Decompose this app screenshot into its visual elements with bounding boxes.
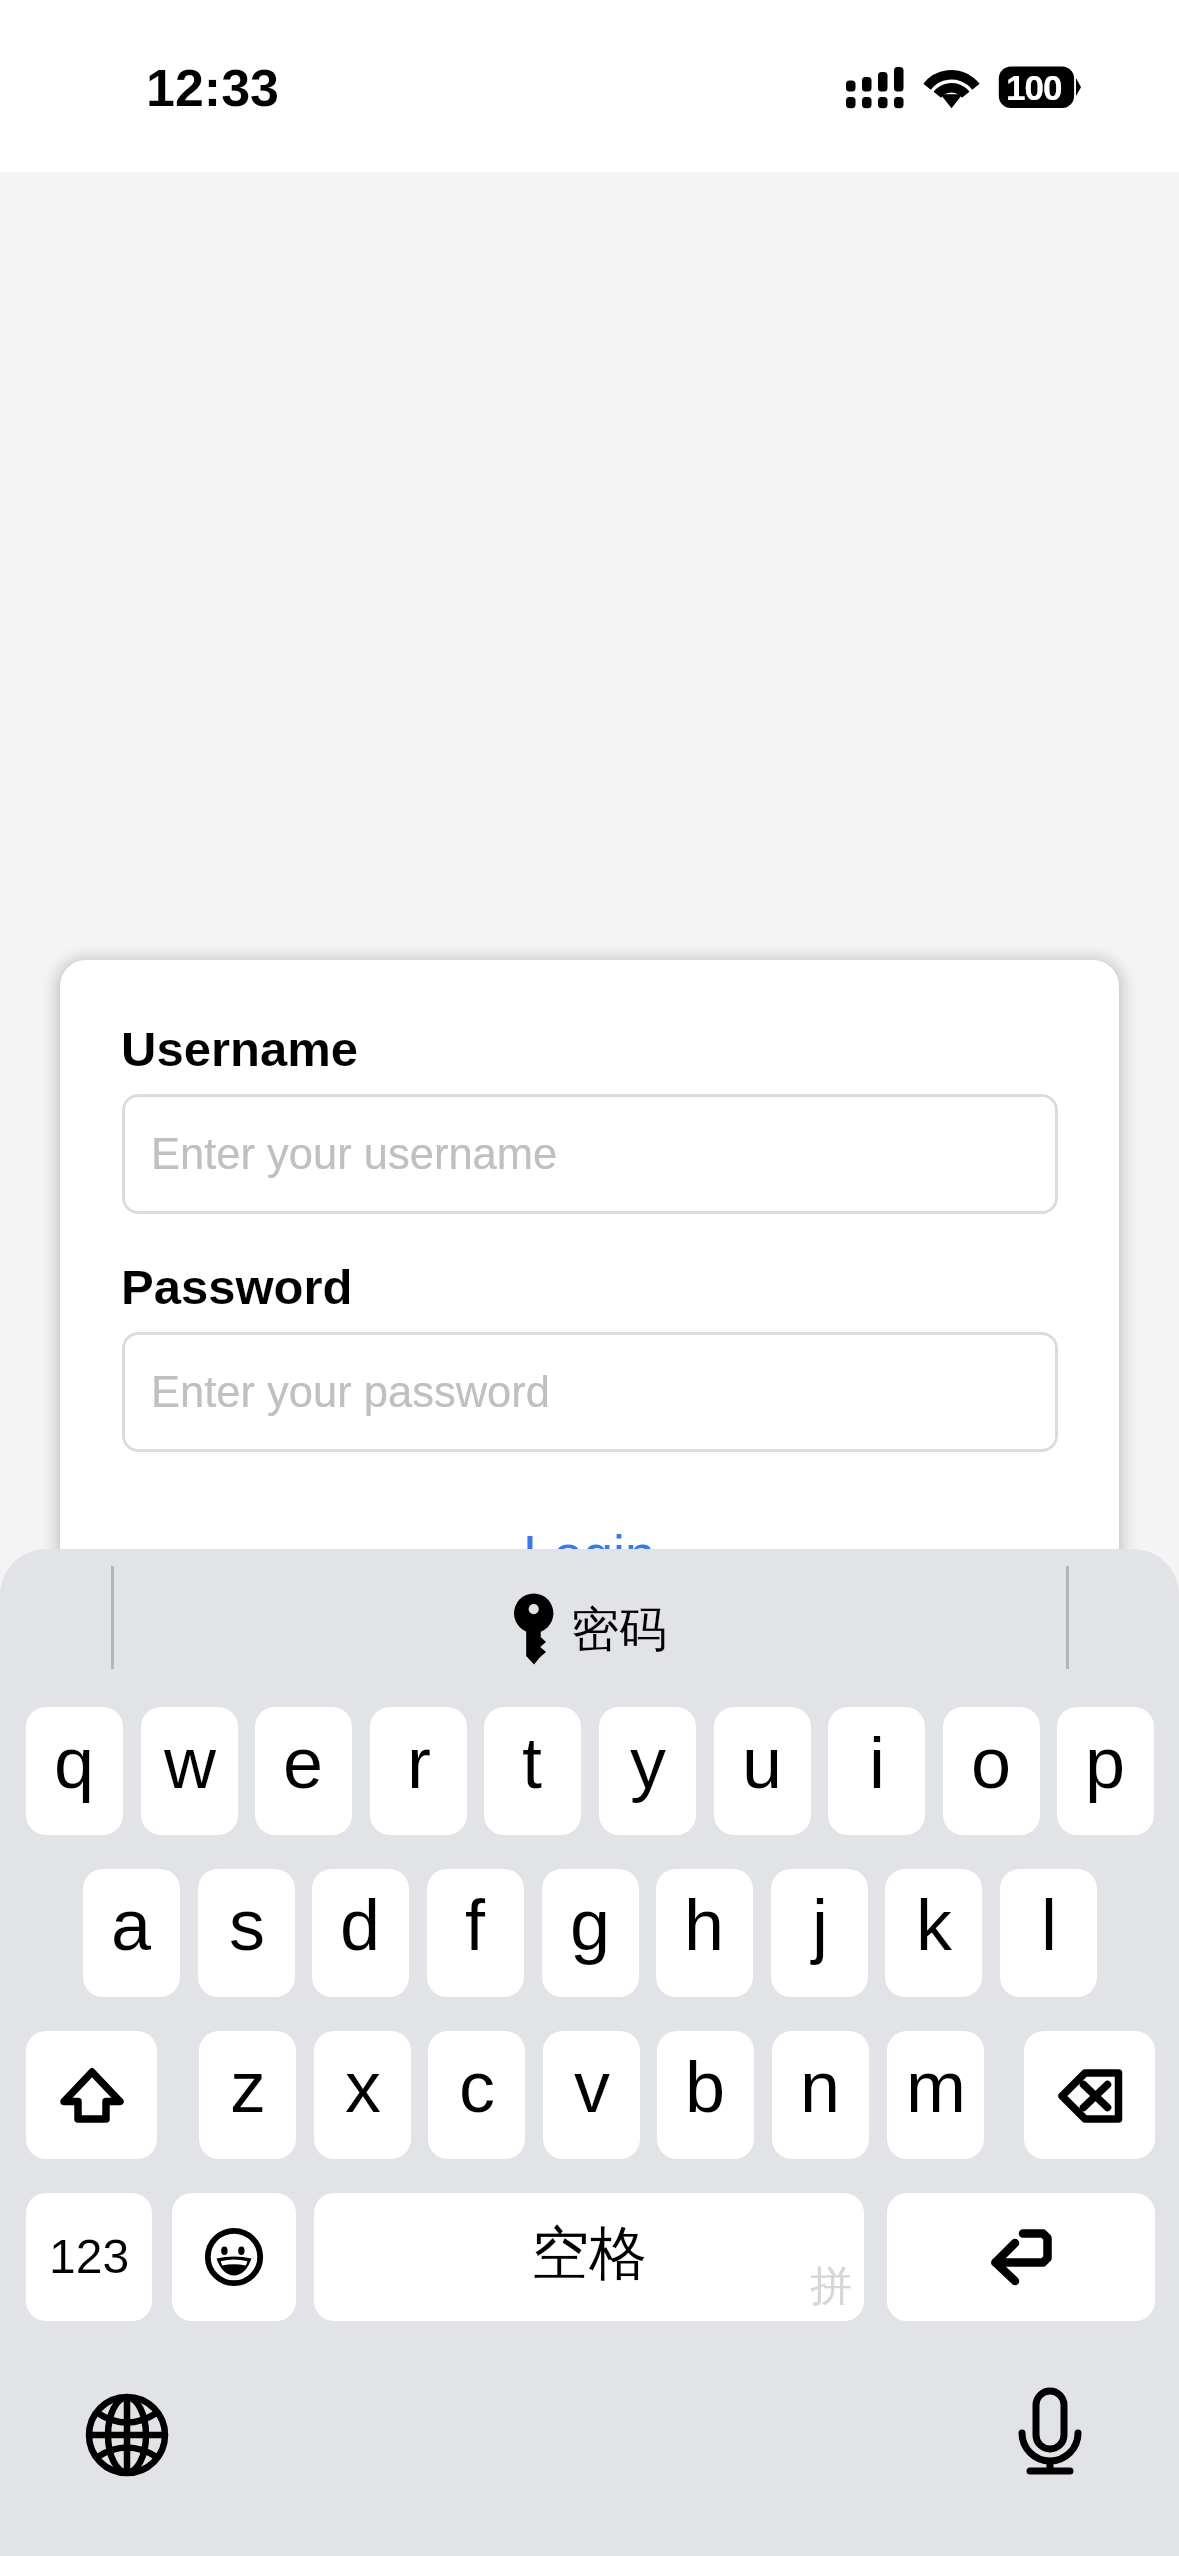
staticText: e	[283, 1723, 324, 1803]
staticText: v	[574, 2047, 610, 2127]
staticText: a	[111, 1885, 152, 1965]
button[interactable]: a	[83, 1869, 180, 1997]
staticText: b	[685, 2047, 726, 2127]
staticText: 100	[1006, 68, 1062, 107]
button[interactable]: Login	[60, 1500, 1119, 1600]
staticText: x	[345, 2047, 381, 2127]
button[interactable]: 123	[26, 2193, 152, 2321]
staticText: g	[570, 1885, 611, 1965]
staticText: f	[465, 1885, 486, 1965]
button[interactable]: Enter your username	[122, 1094, 1058, 1214]
button[interactable]: x	[314, 2031, 411, 2159]
staticText: k	[916, 1885, 952, 1965]
button[interactable]: r	[370, 1707, 467, 1835]
button[interactable]: b	[657, 2031, 754, 2159]
button[interactable]: j	[771, 1869, 868, 1997]
button[interactable]: Enter your password	[122, 1332, 1058, 1452]
button[interactable]: Return	[887, 2193, 1155, 2321]
staticText: n	[800, 2047, 841, 2127]
button[interactable]: Switch keyboard	[77, 2385, 177, 2485]
staticText: 123	[49, 2230, 130, 2284]
button[interactable]: s	[198, 1869, 295, 1997]
button[interactable]: p	[1057, 1707, 1154, 1835]
button[interactable]: Backspace	[1024, 2031, 1155, 2159]
button[interactable]: t	[484, 1707, 581, 1835]
staticText: l	[1041, 1885, 1057, 1965]
button[interactable]: c	[428, 2031, 525, 2159]
button[interactable]: f	[427, 1869, 524, 1997]
staticText: i	[869, 1723, 885, 1803]
button[interactable]: y	[599, 1707, 696, 1835]
staticText: Enter your password	[151, 1368, 550, 1417]
button[interactable]: d	[312, 1869, 409, 1997]
staticText: t	[522, 1723, 543, 1803]
button[interactable]: q	[26, 1707, 123, 1835]
staticText: Login	[523, 1524, 656, 1584]
staticText: j	[812, 1885, 828, 1965]
staticText: m	[906, 2047, 966, 2127]
staticText: p	[1085, 1723, 1126, 1803]
staticText: s	[229, 1885, 265, 1965]
staticText: 拼	[810, 2260, 852, 2313]
button[interactable]: m	[887, 2031, 984, 2159]
button[interactable]: i	[828, 1707, 925, 1835]
staticText: u	[742, 1723, 783, 1803]
button[interactable]: e	[255, 1707, 352, 1835]
button[interactable]: Voice input	[1000, 2381, 1100, 2481]
button[interactable]: n	[772, 2031, 869, 2159]
staticText: w	[164, 1723, 216, 1803]
staticText: c	[459, 2047, 495, 2127]
button[interactable]: h	[656, 1869, 753, 1997]
staticText: h	[684, 1885, 725, 1965]
staticText: d	[340, 1885, 381, 1965]
staticText: 密码	[571, 1600, 667, 1660]
button[interactable]: g	[542, 1869, 639, 1997]
staticText: Enter your username	[151, 1130, 558, 1179]
staticText: r	[407, 1723, 431, 1803]
staticText: z	[230, 2047, 266, 2127]
staticText: 空格	[531, 2217, 647, 2290]
button[interactable]: Shift	[26, 2031, 157, 2159]
staticText: Password	[121, 1260, 353, 1315]
button[interactable]: l	[1000, 1869, 1097, 1997]
staticText: 12:33	[146, 59, 279, 117]
button[interactable]: w	[141, 1707, 238, 1835]
button[interactable]: k	[885, 1869, 982, 1997]
button[interactable]: z	[199, 2031, 296, 2159]
button[interactable]: Emoji	[172, 2193, 296, 2321]
button[interactable]: 密码	[514, 1595, 674, 1671]
staticText: y	[630, 1723, 666, 1803]
button[interactable]: o	[943, 1707, 1040, 1835]
staticText: q	[54, 1723, 95, 1803]
staticText: Username	[121, 1022, 358, 1077]
button[interactable]: v	[543, 2031, 640, 2159]
staticText: o	[971, 1723, 1012, 1803]
button[interactable]: 空格	[314, 2193, 864, 2321]
button[interactable]: u	[714, 1707, 811, 1835]
